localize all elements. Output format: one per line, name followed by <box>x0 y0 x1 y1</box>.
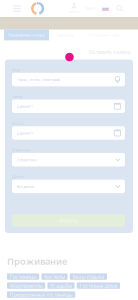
button[interactable]: Гостиницы <box>7 273 39 280</box>
button[interactable]: Экскурсии и туры <box>82 29 126 40</box>
button[interactable]: Без детей <box>12 180 125 193</box>
staticText: Гостиницы <box>10 273 37 280</box>
button[interactable]: Search <box>113 1 127 15</box>
button[interactable]: Проживание и отдых <box>4 29 49 40</box>
staticText: 2 взрослых <box>16 157 36 162</box>
button[interactable]: 2 взрослых <box>12 153 125 166</box>
staticText: Апартаменты <box>10 282 43 289</box>
staticText: Проживание <box>7 255 67 267</box>
staticText: дд/мм/гг <box>16 130 33 136</box>
button[interactable]: Базы отдыха <box>70 273 107 280</box>
staticText: Взрослых <box>12 147 30 152</box>
staticText: Детей <box>12 174 23 179</box>
button[interactable]: дд/мм/гг <box>12 126 125 140</box>
staticText: Без детей <box>16 184 33 189</box>
staticText: Гостевые дома <box>79 282 117 289</box>
button[interactable]: дд/мм/гг <box>12 99 125 113</box>
staticText: город, отель, санаторий <box>16 77 59 82</box>
button[interactable]: Хостелы <box>41 273 68 280</box>
staticText: Оставить заявку <box>89 48 131 56</box>
button[interactable]: Гостевые дома <box>77 282 120 289</box>
button[interactable]: Language <box>98 1 113 15</box>
staticText: Усадьбы <box>50 282 72 289</box>
staticText: Придорожные гостиницы <box>10 291 73 298</box>
staticText: Базы отдыха <box>72 273 104 280</box>
button[interactable]: Придорожные гостиницы <box>7 291 75 298</box>
staticText: дд/мм/гг <box>16 104 33 109</box>
button[interactable]: Account <box>66 1 82 15</box>
staticText: Проживание и отдых <box>8 32 45 37</box>
staticText: Искать <box>59 217 77 224</box>
button[interactable]: город, отель, санаторий <box>12 73 125 86</box>
staticText: Выезд <box>12 120 24 126</box>
staticText: Хостелы <box>44 273 65 280</box>
button[interactable]: Menu <box>11 1 23 15</box>
staticText: Куда <box>12 67 20 72</box>
staticText: войти <box>69 9 79 14</box>
button[interactable]: Апартаменты <box>7 282 45 289</box>
button[interactable]: Транспорт <box>49 29 82 40</box>
staticText: Заезд <box>12 94 22 99</box>
staticText: 8(800) <box>85 6 95 11</box>
button[interactable]: Усадьбы <box>47 282 75 289</box>
button[interactable]: Оставить заявку <box>89 48 129 56</box>
